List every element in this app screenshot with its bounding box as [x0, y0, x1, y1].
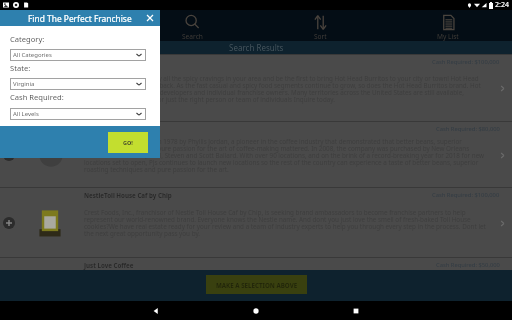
staticText: Category: [10, 34, 45, 44]
button[interactable]: MAKE A SELECTION ABOVE [206, 275, 307, 294]
button[interactable]: Close [144, 12, 156, 24]
button[interactable]: PJ's Coffee [0, 121, 512, 187]
staticText: Cash Required: $100,000 [432, 58, 500, 66]
staticText: Just Love Coffee [84, 261, 134, 269]
staticText: Find The Perfect Franchise [28, 13, 132, 24]
button[interactable]: All Levels [10, 108, 146, 120]
button[interactable]: NestleToll House Caf by Chip [0, 187, 512, 257]
button[interactable]: Sort [256, 10, 384, 41]
button[interactable]: Just Love Coffee [0, 257, 512, 269]
staticText: Sort [314, 32, 327, 41]
staticText: All Levels [13, 110, 39, 118]
staticText: Search Results [229, 42, 284, 53]
button[interactable]: Details [497, 150, 507, 160]
staticText: Cash Required: $100,000 [432, 191, 500, 199]
staticText: All Categories [13, 51, 52, 59]
staticText: MAKE A SELECTION ABOVE [216, 281, 298, 289]
button[interactable]: Virginia [10, 78, 146, 90]
button[interactable]: GO! [108, 132, 148, 153]
staticText: Cash Required: $80,000 [436, 125, 500, 133]
staticText: PJ's Coffee was founded in 1978 by Phyll… [84, 137, 486, 173]
staticText: State: [10, 63, 31, 73]
button[interactable]: Home [0, 10, 128, 41]
staticText: Hot Head Burritos [84, 58, 140, 66]
staticText: Virginia [13, 80, 35, 88]
staticText: Cash Required: [10, 92, 64, 102]
staticText: Search [182, 32, 203, 41]
staticText: My List [437, 32, 459, 41]
button[interactable]: Add to my list [2, 216, 15, 229]
staticText: Cash Required: $50,000 [436, 261, 500, 269]
other: Back [152, 307, 160, 315]
staticText: 2:24 [495, 0, 509, 10]
other: Home [252, 307, 260, 315]
button[interactable]: Add to my list [2, 82, 15, 95]
button[interactable]: My List [384, 10, 512, 41]
button[interactable]: Hot Head Burritos [0, 54, 512, 121]
staticText: PJ's Coffee [84, 125, 117, 133]
other: Recents [352, 307, 360, 315]
button[interactable]: All Categories [10, 49, 146, 61]
staticText: position yourself to satisfy all the spi… [84, 74, 486, 103]
button[interactable]: Details [497, 83, 507, 93]
button[interactable]: Details [497, 218, 507, 228]
button[interactable]: Add to my list [2, 148, 15, 161]
staticText: NestleToll House Caf by Chip [84, 191, 172, 199]
button[interactable]: Search [128, 10, 256, 41]
staticText: GO! [123, 139, 133, 146]
